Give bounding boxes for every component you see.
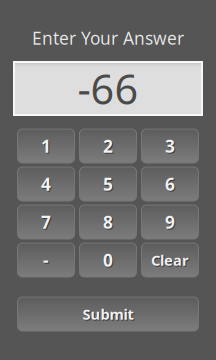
staticText: Submit (82, 304, 133, 324)
button[interactable]: 0 (79, 243, 136, 277)
staticText: - (43, 248, 49, 271)
button[interactable]: 9 (141, 205, 198, 239)
button[interactable]: - (17, 243, 74, 277)
staticText: 3 (165, 134, 175, 157)
staticText: 2 (103, 134, 113, 157)
staticText: Submit (83, 305, 134, 325)
staticText: 2 (104, 135, 114, 158)
staticText: Clear (151, 250, 189, 270)
staticText: 5 (103, 172, 113, 195)
staticText: 0 (103, 248, 113, 271)
staticText: 8 (103, 210, 113, 233)
staticText: 5 (104, 173, 114, 196)
staticText: 1 (42, 135, 52, 158)
staticText: 9 (166, 211, 176, 234)
staticText: Clear (152, 251, 190, 271)
staticText: - (44, 249, 50, 272)
button[interactable]: 2 (79, 129, 136, 163)
button[interactable]: 7 (17, 205, 74, 239)
button[interactable]: Submit (17, 297, 198, 331)
staticText: 7 (42, 211, 52, 234)
staticText: Enter Your Answer (32, 26, 184, 49)
button[interactable]: 6 (141, 167, 198, 201)
button[interactable]: 5 (79, 167, 136, 201)
staticText: 9 (165, 210, 175, 233)
staticText: 4 (41, 172, 51, 195)
button[interactable]: 4 (17, 167, 74, 201)
staticText: 7 (41, 210, 51, 233)
button[interactable]: 8 (79, 205, 136, 239)
staticText: -66 (77, 61, 138, 116)
staticText: 8 (104, 211, 114, 234)
staticText: 4 (42, 173, 52, 196)
staticText: 6 (166, 173, 176, 196)
staticText: 3 (166, 135, 176, 158)
staticText: 6 (165, 172, 175, 195)
button[interactable]: 1 (17, 129, 74, 163)
button[interactable]: 3 (141, 129, 198, 163)
staticText: 0 (104, 249, 114, 272)
staticText: 1 (41, 134, 51, 157)
button[interactable]: Clear (141, 243, 198, 277)
